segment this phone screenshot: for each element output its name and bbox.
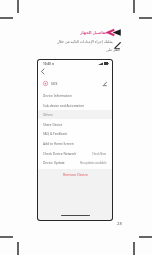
staticText: FAQ & Feedback: [43, 132, 68, 136]
staticText: Add to Home Screen: [43, 142, 74, 146]
other: Edit: [102, 81, 107, 86]
other: Device details: [107, 29, 121, 36]
button[interactable]: SOS: [43, 78, 107, 88]
button[interactable]: Check Device Network: [43, 149, 107, 159]
staticText: يمكنك إجراء الإعدادات التالية من خلال: [57, 39, 113, 44]
button[interactable]: Device Update: [43, 158, 107, 168]
staticText: Share Device: [43, 123, 63, 127]
staticText: 10:40: [43, 62, 51, 66]
button[interactable]: تفاصيل الجهاز: [47, 29, 107, 36]
button[interactable]: Back: [38, 67, 47, 76]
button[interactable]: Device Information: [43, 91, 107, 101]
staticText: النقر على: [106, 47, 121, 52]
button[interactable]: Share Device: [43, 120, 107, 130]
staticText: تفاصيل الجهاز: [80, 30, 107, 35]
staticText: Check Now: [92, 152, 107, 156]
button[interactable]: Sub-device and Automation: [43, 101, 107, 111]
button[interactable]: Add to Home Screen: [43, 139, 107, 149]
staticText: Device Information: [43, 94, 72, 98]
button[interactable]: Remove Device: [38, 170, 112, 179]
staticText: Device Update: [43, 161, 65, 165]
staticText: 28: [117, 221, 122, 227]
staticText: Remove Device: [63, 172, 88, 177]
staticText: Check Device Network: [43, 152, 77, 156]
staticText: No updates available: [80, 161, 107, 165]
staticText: Others: [43, 113, 53, 117]
staticText: SOS: [51, 81, 58, 86]
button[interactable]: FAQ & Feedback: [43, 129, 107, 139]
staticText: Sub-device and Automation: [43, 104, 85, 108]
